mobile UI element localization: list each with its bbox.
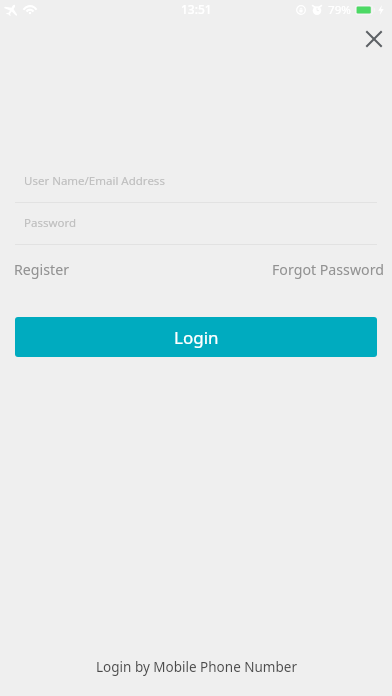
staticText: Login by Mobile Phone Number [96, 658, 297, 676]
staticText: User Name/Email Address [24, 173, 165, 189]
button[interactable]: Close [352, 17, 392, 61]
button[interactable]: Forgot Password [272, 260, 384, 279]
button[interactable]: Register [14, 260, 69, 279]
staticText: Register [14, 260, 69, 279]
button[interactable]: Password [24, 208, 377, 238]
staticText: 79% [328, 2, 351, 18]
button[interactable]: User Name/Email Address [24, 166, 377, 196]
staticText: Login [174, 326, 219, 349]
button[interactable]: Login [15, 317, 377, 357]
staticText: 13:51 [181, 1, 212, 17]
button[interactable]: Login by Mobile Phone Number [0, 652, 392, 682]
staticText: Forgot Password [272, 260, 384, 279]
staticText: Password [24, 215, 77, 231]
